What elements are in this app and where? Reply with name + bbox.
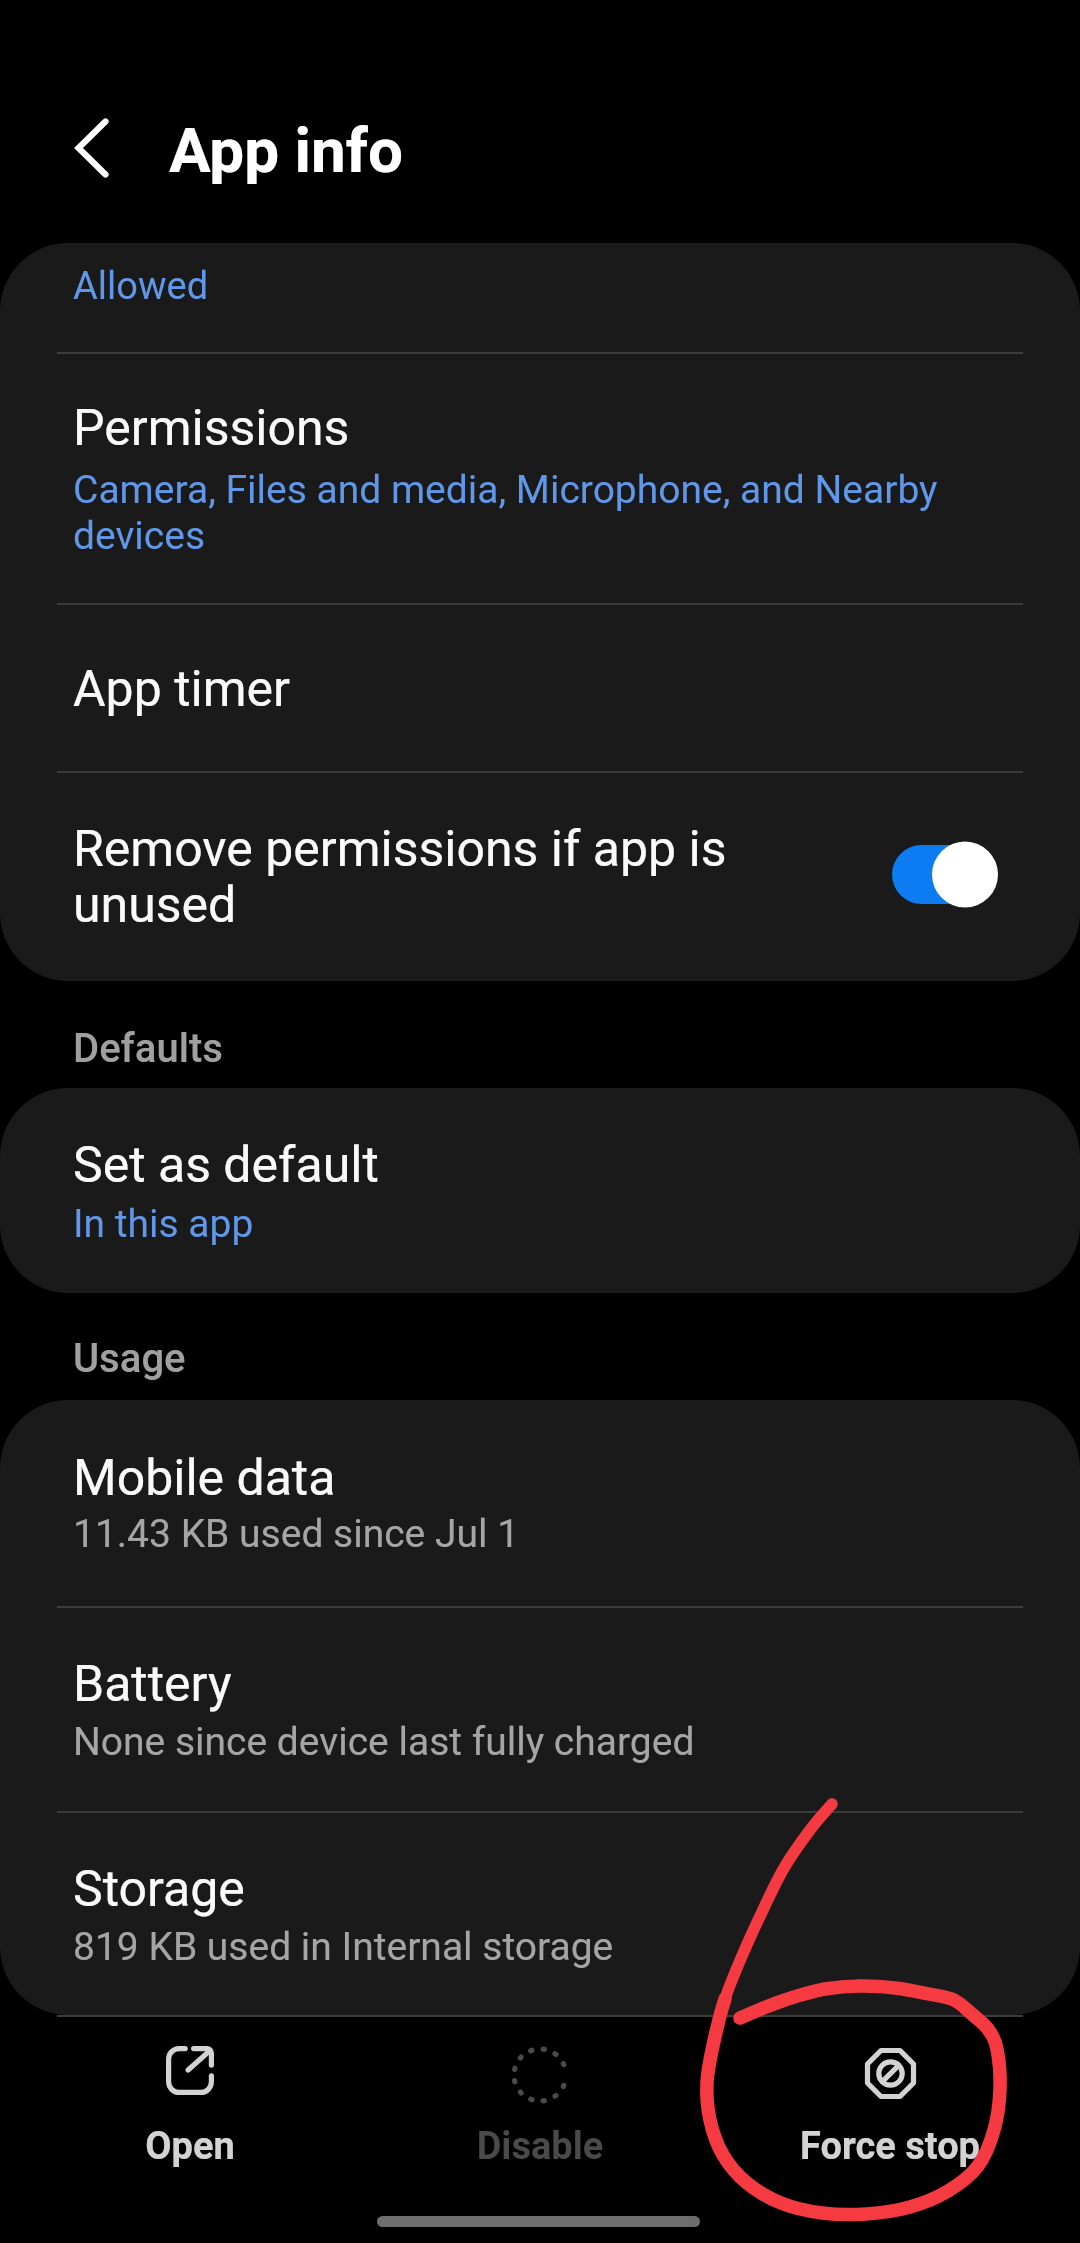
staticText: App timer xyxy=(73,660,290,719)
staticText: Open xyxy=(120,2124,260,2169)
staticText: None since device last fully charged xyxy=(73,1719,695,1765)
staticText: 819 KB used in Internal storage xyxy=(73,1924,614,1970)
staticText: App info xyxy=(169,114,403,187)
staticText: Allowed xyxy=(73,264,209,309)
staticText: Camera, Files and media, Microphone, and… xyxy=(73,467,963,558)
button[interactable]: Storage xyxy=(0,1811,1080,2015)
button[interactable]: Battery xyxy=(0,1606,1080,1811)
button[interactable]: App timer xyxy=(0,603,1080,771)
button[interactable]: Remove permissions if app is unused xyxy=(880,832,1008,918)
button[interactable]: Disable xyxy=(360,2019,720,2181)
other: Force stop xyxy=(863,2046,918,2101)
staticText: 11.43 KB used since Jul 1 xyxy=(73,1511,520,1557)
button[interactable]: Permissions xyxy=(0,352,1080,603)
staticText: In this app xyxy=(73,1201,254,1247)
staticText: Disable xyxy=(435,2124,645,2169)
staticText: Storage xyxy=(73,1860,245,1919)
staticText: Permissions xyxy=(73,399,350,458)
button[interactable]: Allowed xyxy=(0,243,1080,352)
staticText: Remove permissions if app is unused xyxy=(73,820,773,935)
other: Disable xyxy=(511,2046,569,2104)
staticText: Force stop xyxy=(740,2124,1040,2169)
staticText: Mobile data xyxy=(73,1449,336,1508)
staticText: Set as default xyxy=(73,1136,379,1195)
button[interactable]: Set as default xyxy=(0,1088,1080,1293)
button[interactable]: Open xyxy=(10,2019,370,2181)
staticText: Defaults xyxy=(73,1025,223,1072)
button[interactable]: Remove permissions if app is unused xyxy=(0,771,1080,981)
staticText: Battery xyxy=(73,1655,232,1714)
button[interactable]: Back xyxy=(48,104,136,192)
button[interactable]: Force stop xyxy=(710,2019,1070,2181)
button[interactable]: Mobile data xyxy=(0,1400,1080,1606)
staticText: Usage xyxy=(73,1335,186,1382)
other: Open xyxy=(166,2046,214,2095)
